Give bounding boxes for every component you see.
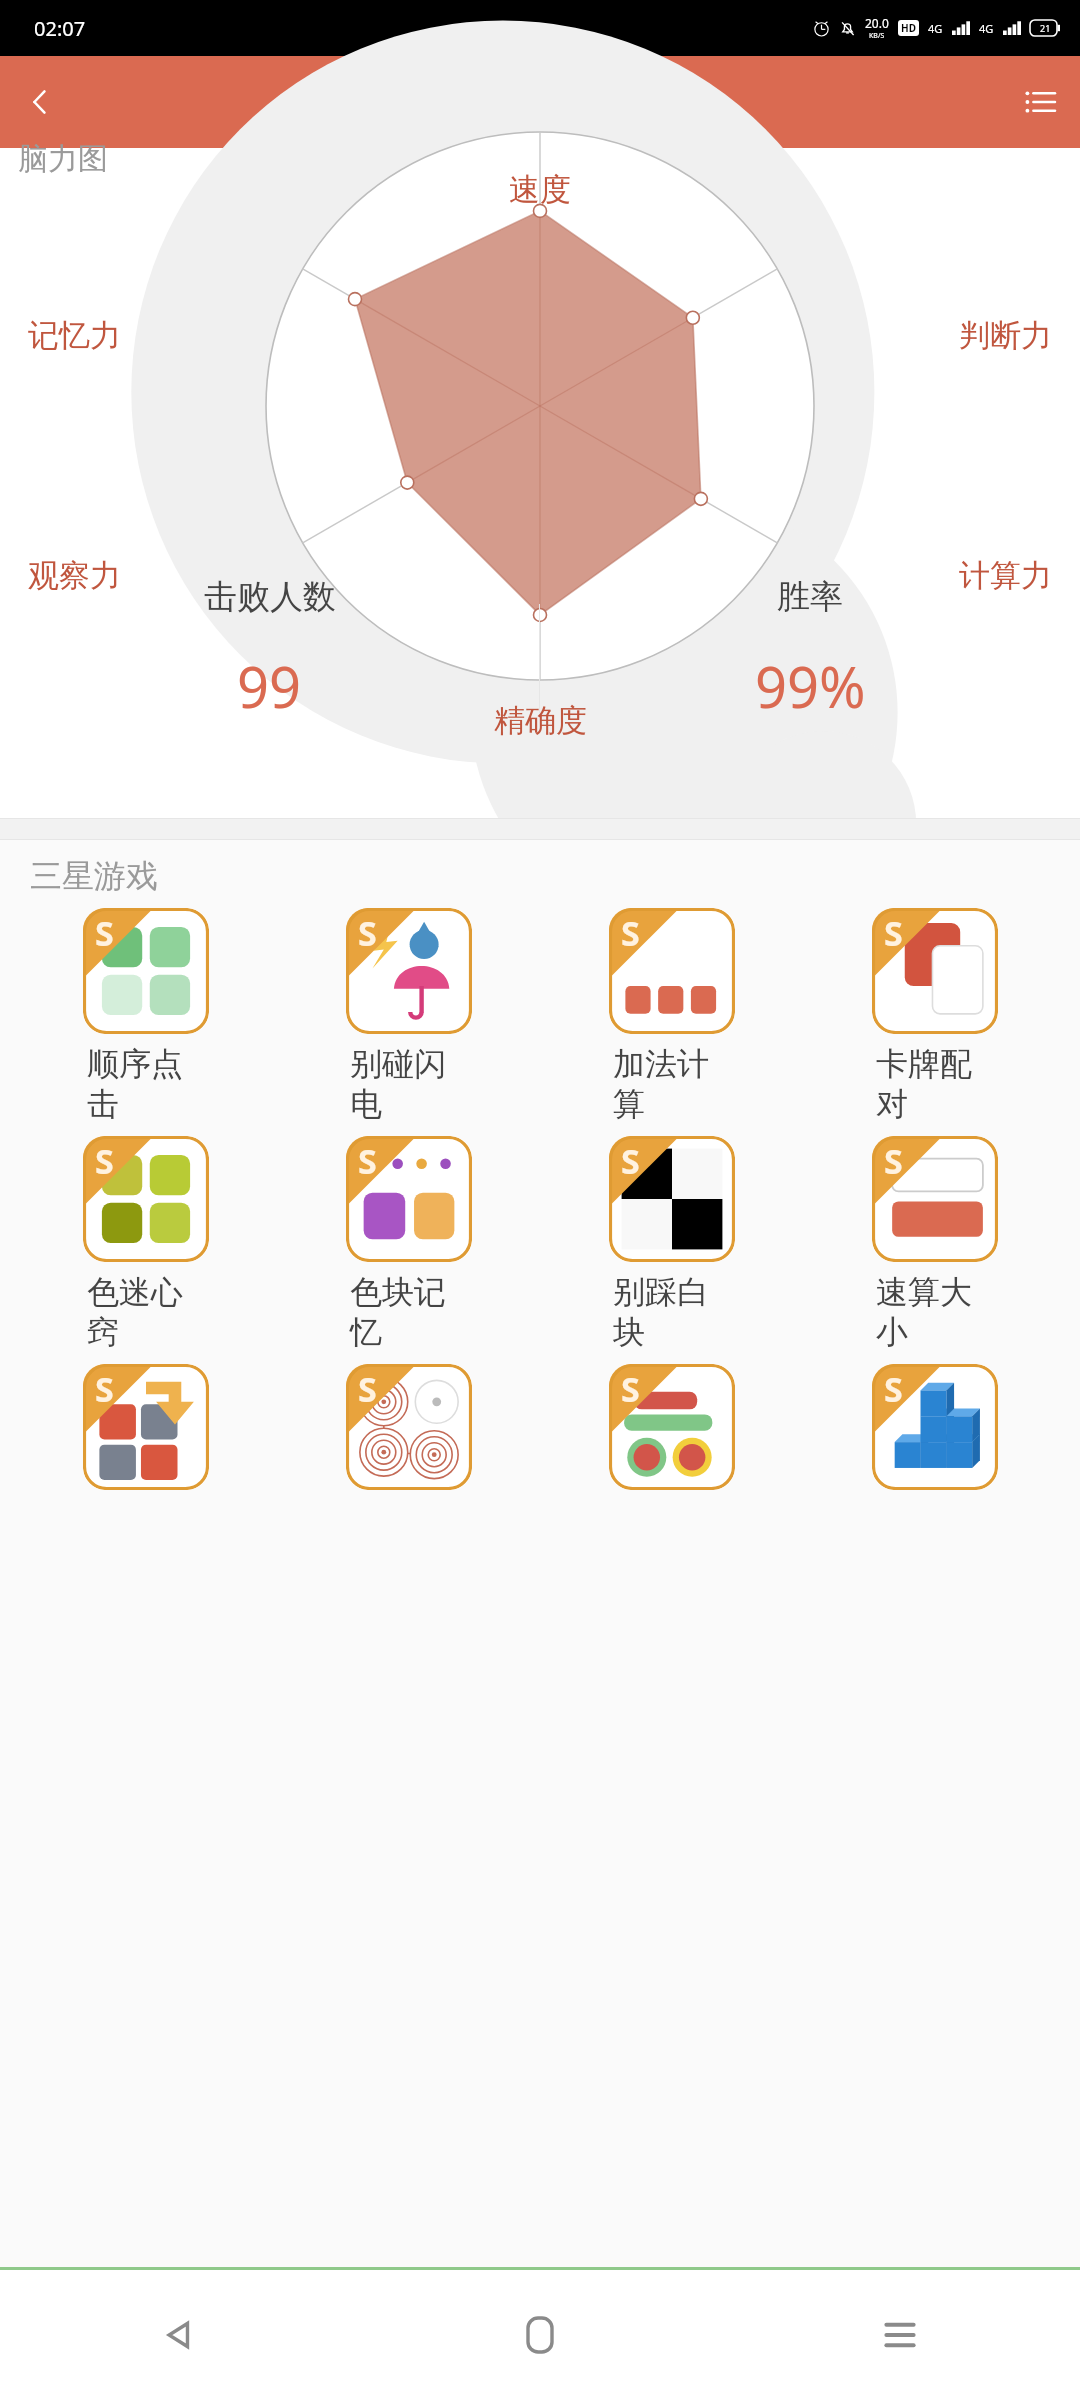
staticText: 20.0	[865, 15, 889, 31]
staticText: S	[884, 910, 903, 956]
staticText: 99%	[755, 648, 866, 724]
button[interactable]: Menu	[1000, 62, 1080, 142]
staticText: 02:07	[34, 15, 86, 42]
staticText: S	[621, 1366, 640, 1412]
staticText: S	[358, 910, 377, 956]
staticText: S	[95, 1366, 114, 1412]
staticText: 脑力图	[18, 140, 108, 178]
staticText: 顺序点击	[87, 1044, 205, 1124]
button[interactable]: S	[540, 902, 803, 1130]
button[interactable]: S	[14, 1358, 277, 1496]
staticText: 观察力	[28, 556, 121, 595]
staticText: 21	[1040, 22, 1051, 34]
button[interactable]: S	[803, 902, 1066, 1130]
staticText: 计算力	[959, 556, 1052, 595]
staticText: 加法计算	[613, 1044, 731, 1124]
staticText: 99	[237, 648, 302, 724]
button[interactable]: S	[277, 902, 540, 1130]
staticText: S	[95, 1138, 114, 1184]
staticText: S	[884, 1366, 903, 1412]
staticText: 判断力	[959, 316, 1052, 355]
staticText: 速算大小	[876, 1272, 994, 1352]
staticText: 精确度	[494, 701, 587, 740]
button[interactable]: Recent apps	[720, 2270, 1080, 2400]
button[interactable]: Home	[360, 2270, 720, 2400]
staticText: 击败人数	[204, 576, 336, 618]
staticText: 别碰闪电	[350, 1044, 468, 1124]
button[interactable]: S	[803, 1358, 1066, 1496]
button[interactable]: S	[14, 1130, 277, 1358]
staticText: HD	[901, 21, 916, 35]
button[interactable]: S	[540, 1130, 803, 1358]
button[interactable]: S	[540, 1358, 803, 1496]
staticText: KB/S	[869, 31, 885, 41]
staticText: 色块记忆	[350, 1272, 468, 1352]
staticText: 记忆力	[28, 316, 121, 355]
button[interactable]: Back	[0, 2270, 360, 2400]
button[interactable]: S	[14, 902, 277, 1130]
staticText: S	[358, 1138, 377, 1184]
staticText: S	[358, 1366, 377, 1412]
staticText: S	[621, 1138, 640, 1184]
staticText: 别踩白块	[613, 1272, 731, 1352]
staticText: 4G	[928, 21, 943, 36]
staticText: 卡牌配对	[876, 1044, 994, 1124]
staticText: 4G	[979, 21, 994, 36]
staticText: S	[621, 910, 640, 956]
staticText: 色迷心窍	[87, 1272, 205, 1352]
staticText: 胜率	[777, 576, 843, 618]
staticText: S	[95, 910, 114, 956]
button[interactable]: S	[277, 1358, 540, 1496]
staticText: 三星游戏	[30, 856, 158, 896]
staticText: 速度	[509, 170, 571, 209]
button[interactable]: S	[803, 1130, 1066, 1358]
button[interactable]: Back	[0, 62, 80, 142]
staticText: S	[884, 1138, 903, 1184]
button[interactable]: S	[277, 1130, 540, 1358]
